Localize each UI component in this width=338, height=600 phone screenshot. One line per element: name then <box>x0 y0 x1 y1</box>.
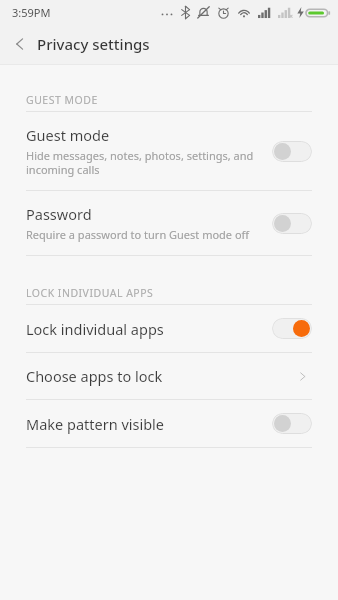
button[interactable]: Make pattern visible <box>0 400 338 447</box>
staticText: Choose apps to lock <box>26 366 163 386</box>
button[interactable]: Toggle off <box>272 413 312 434</box>
button[interactable]: Toggle off <box>272 213 312 234</box>
staticText: Require a password to turn Guest mode of… <box>26 227 250 242</box>
staticText: Make pattern visible <box>26 414 165 434</box>
staticText: 3:59PM <box>12 5 51 20</box>
staticText: Password <box>26 204 92 224</box>
button[interactable]: Back <box>0 24 40 64</box>
staticText: Privacy settings <box>37 34 150 54</box>
staticText: Guest mode <box>26 125 110 145</box>
button[interactable]: Choose apps to lock <box>0 353 338 399</box>
staticText: GUEST MODE <box>26 93 98 107</box>
button[interactable]: Guest mode <box>0 112 338 190</box>
button[interactable]: Lock individual apps <box>0 305 338 352</box>
staticText: Hide messages, notes, photos, settings, … <box>26 148 254 177</box>
button[interactable]: Password <box>0 191 338 255</box>
staticText: LOCK INDIVIDUAL APPS <box>26 286 154 300</box>
staticText: Lock individual apps <box>26 319 164 339</box>
button[interactable]: Toggle on <box>272 318 312 339</box>
button[interactable]: Toggle off <box>272 141 312 162</box>
